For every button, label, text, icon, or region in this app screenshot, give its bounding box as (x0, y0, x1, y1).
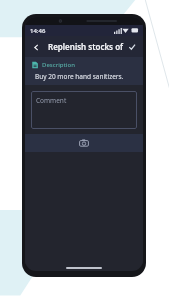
button[interactable]: Attach photo (25, 134, 143, 152)
staticText: 14:46 (30, 27, 46, 35)
staticText: Replenish stocks of ... (48, 41, 125, 52)
staticText: Comment (36, 96, 67, 105)
button[interactable]: Save (125, 40, 139, 54)
staticText: Description (42, 61, 75, 69)
staticText: Buy 20 more hand sanitizers. (35, 72, 124, 81)
button[interactable]: Back (29, 40, 43, 54)
button[interactable]: Comment (31, 91, 137, 129)
